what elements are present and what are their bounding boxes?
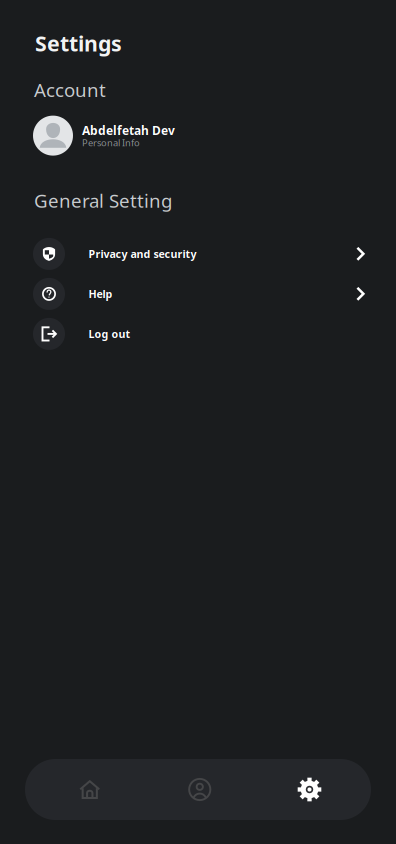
button[interactable]: Log out	[0, 314, 396, 354]
button[interactable]: Home	[34, 759, 145, 820]
button[interactable]: Abdelfetah Dev	[0, 102, 396, 156]
button[interactable]: Profile	[145, 759, 254, 820]
staticText: Settings	[35, 29, 122, 57]
staticText: Log out	[88, 327, 130, 341]
staticText: Abdelfetah Dev	[82, 122, 175, 138]
button[interactable]: Help	[0, 274, 396, 314]
button[interactable]: Privacy and security	[0, 234, 396, 274]
staticText: General Setting	[34, 188, 172, 213]
staticText: Help	[88, 287, 112, 301]
staticText: Account	[34, 77, 106, 102]
staticText: Personal Info	[82, 136, 140, 149]
staticText: Privacy and security	[88, 247, 196, 261]
button[interactable]: Settings	[254, 759, 364, 820]
